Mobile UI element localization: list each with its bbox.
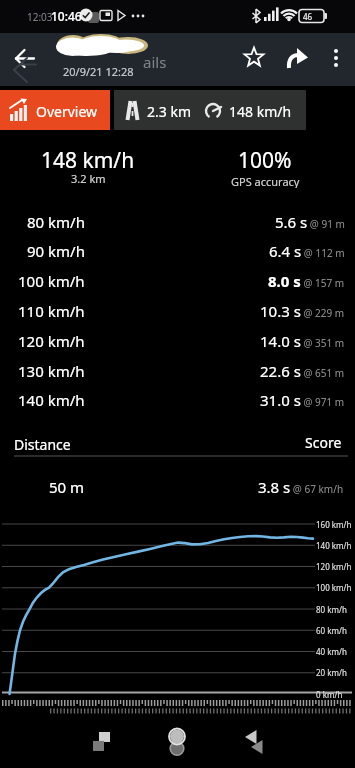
staticText: 100% — [238, 146, 292, 174]
staticText: 40 km/h — [316, 646, 347, 657]
staticText: 60 km/h — [316, 625, 347, 636]
button[interactable] — [0, 236, 355, 266]
button[interactable] — [0, 385, 355, 415]
staticText: 80 km/h — [316, 604, 347, 615]
staticText: 31.0 s @ 971 m — [260, 390, 345, 410]
button[interactable] — [114, 90, 306, 130]
button[interactable] — [0, 472, 355, 502]
staticText: 46 — [303, 11, 313, 22]
button[interactable] — [0, 326, 355, 356]
staticText: 10:46 — [51, 8, 82, 24]
button[interactable] — [0, 356, 355, 386]
staticText: 3.2 km — [71, 171, 106, 185]
staticText: 12:03 — [27, 10, 53, 24]
staticText: GPS accuracy — [231, 174, 300, 188]
button[interactable] — [152, 722, 202, 768]
staticText: Overview — [36, 102, 98, 121]
staticText: 50 m — [49, 477, 85, 497]
staticText: 120 km/h — [316, 561, 352, 572]
button[interactable] — [0, 266, 355, 296]
button[interactable] — [0, 207, 355, 237]
staticText: 140 km/h — [18, 390, 85, 410]
staticText: Distance — [14, 435, 71, 454]
staticText: 0 km/h — [316, 689, 343, 700]
staticText: 10.3 s @ 229 m — [260, 301, 345, 321]
staticText: 110 km/h — [18, 301, 85, 321]
button[interactable] — [280, 40, 316, 76]
staticText: 148 km/h — [41, 146, 135, 174]
staticText: 20 km/h — [316, 667, 347, 678]
staticText: 22.6 s @ 651 m — [260, 361, 345, 381]
button[interactable] — [236, 40, 272, 76]
button[interactable] — [6, 41, 42, 77]
staticText: 14.0 s @ 351 m — [260, 331, 345, 351]
staticText: 160 km/h — [316, 519, 352, 530]
staticText: Score — [305, 433, 342, 452]
staticText: 2.3 km — [147, 102, 191, 121]
staticText: 148 km/h — [229, 102, 292, 121]
staticText: 20/9/21 12:28 — [63, 64, 134, 79]
staticText: ails — [143, 52, 167, 72]
staticText: 120 km/h — [18, 331, 85, 351]
staticText: 5.6 s @ 91 m — [275, 212, 345, 232]
button[interactable] — [0, 296, 355, 326]
staticText: 130 km/h — [18, 361, 85, 381]
staticText: 100 km/h — [316, 582, 352, 593]
button[interactable] — [0, 90, 110, 130]
staticText: 80 km/h — [27, 212, 85, 232]
button[interactable] — [225, 722, 275, 768]
staticText: 3.8 s @ 67 km/h — [258, 477, 344, 497]
button[interactable] — [322, 40, 352, 76]
staticText: 8.0 s @ 157 m — [268, 271, 345, 291]
staticText: 100 km/h — [18, 271, 85, 291]
staticText: 90 km/h — [27, 241, 85, 261]
staticText: 6.4 s @ 112 m — [269, 241, 345, 261]
staticText: 140 km/h — [316, 540, 352, 551]
button[interactable] — [80, 722, 130, 768]
